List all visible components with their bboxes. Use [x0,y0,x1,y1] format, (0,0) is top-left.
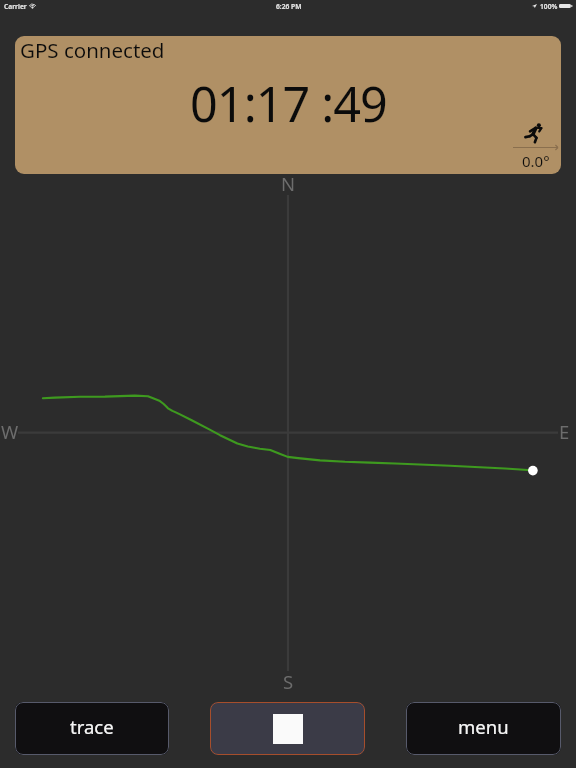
staticText: 0.0° [522,151,550,171]
button[interactable]: trace [15,702,169,755]
staticText: GPS connected [20,36,165,64]
staticText: 01:17 :49 [190,70,387,136]
staticText: E [559,419,570,444]
staticText: 6:26 PM [276,2,302,11]
button[interactable]: Stop [210,702,365,755]
staticText: W [1,419,19,444]
staticText: Carrier [4,2,27,11]
staticText: trace [70,714,114,739]
button[interactable]: menu [406,702,561,755]
button[interactable]: GPS connected [15,36,561,174]
staticText: S [283,669,294,694]
staticText: N [281,171,296,196]
staticText: 100% [540,2,558,11]
staticText: menu [458,714,509,739]
